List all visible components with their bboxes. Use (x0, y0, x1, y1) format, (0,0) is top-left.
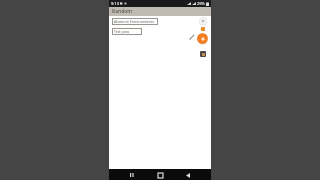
button[interactable]: Action two (201, 27, 205, 31)
staticText: Aleatorio Entrenamiento (114, 19, 155, 24)
button[interactable]: Random (109, 7, 211, 16)
staticText: Random (112, 8, 133, 15)
button[interactable]: Aleatorio Entrenamiento (112, 18, 158, 25)
button[interactable]: Edit (188, 33, 195, 40)
button[interactable]: Add (197, 33, 208, 44)
button[interactable]: Back (183, 170, 193, 180)
button[interactable]: Recent apps (127, 170, 137, 180)
staticText: 29% (197, 1, 205, 6)
staticText: 9:13 (111, 1, 119, 6)
staticText: Test para Sesion (114, 29, 140, 34)
button[interactable]: Test para Sesion (112, 28, 142, 35)
button[interactable]: Action one (199, 17, 207, 25)
button[interactable]: More options (200, 51, 206, 57)
button[interactable]: Home (155, 170, 165, 180)
